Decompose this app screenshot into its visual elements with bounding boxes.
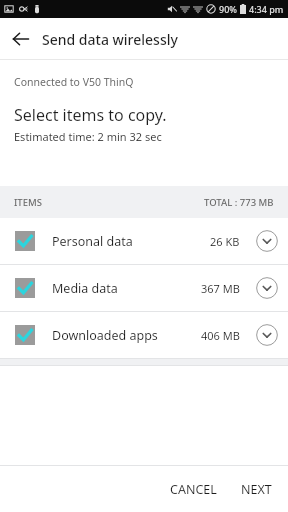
staticText: 4:34 pm	[249, 3, 284, 15]
button[interactable]: Expand Downloaded apps	[252, 320, 282, 350]
staticText: 90%	[219, 3, 237, 15]
staticText: ITEMS	[14, 196, 42, 209]
staticText: Select items to copy.	[14, 104, 167, 126]
staticText: Estimated time: 2 min 32 sec	[14, 129, 162, 144]
button[interactable]: Expand Media data	[252, 273, 282, 303]
button[interactable]: Media data checkbox	[0, 265, 288, 311]
button[interactable]: Back	[0, 18, 42, 60]
staticText: Connected to V50 ThinQ	[14, 75, 134, 89]
button[interactable]: NEXT	[229, 471, 284, 508]
button[interactable]: CANCEL	[158, 471, 229, 508]
staticText: 26 KB	[210, 234, 240, 249]
staticText: NEXT	[241, 481, 272, 498]
button[interactable]: Personal data checkbox	[0, 218, 288, 264]
staticText: 367 MB	[201, 281, 240, 296]
staticText: 406 MB	[201, 328, 240, 343]
staticText: Send data wirelessly	[42, 30, 178, 49]
button[interactable]: Downloaded apps checkbox	[0, 312, 288, 358]
button[interactable]: Expand Personal data	[252, 226, 282, 256]
staticText: CANCEL	[170, 481, 217, 498]
staticText: TOTAL : 773 MB	[204, 196, 274, 209]
staticText: Downloaded apps	[52, 327, 158, 344]
staticText: Media data	[52, 280, 118, 297]
other: Personal data checkbox	[15, 231, 35, 251]
other: Downloaded apps checkbox	[15, 325, 35, 345]
staticText: Personal data	[52, 233, 133, 250]
other: Media data checkbox	[15, 278, 35, 298]
